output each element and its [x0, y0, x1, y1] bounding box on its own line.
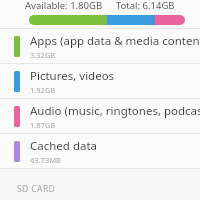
- staticText: SD CARD: [17, 183, 56, 195]
- staticText: Total: 6.14GB: [116, 0, 175, 10]
- staticText: 1.92GB: [30, 85, 56, 95]
- button[interactable]: Cached data: [0, 134, 200, 169]
- button[interactable]: Apps (app data & media content): [0, 29, 200, 64]
- staticText: Audio (music, ringtones, podcasts…): [30, 103, 200, 119]
- staticText: Pictures, videos: [30, 68, 115, 84]
- staticText: 1.87GB: [30, 120, 56, 130]
- staticText: Apps (app data & media content): [30, 33, 200, 49]
- button[interactable]: Audio (music, ringtones, podcasts…): [0, 99, 200, 134]
- button[interactable]: Pictures, videos: [0, 64, 200, 99]
- staticText: Cached data: [30, 138, 98, 154]
- staticText: 3.32GB: [30, 50, 56, 60]
- staticText: 43.73MB: [30, 155, 61, 165]
- staticText: Available: 1.80GB: [25, 0, 103, 10]
